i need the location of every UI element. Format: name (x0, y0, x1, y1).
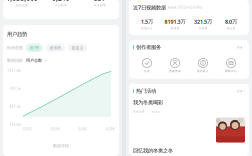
staticText: 点赞量 (198, 27, 207, 30)
button[interactable]: 认证 (133, 58, 161, 73)
staticText: · 数据详情 · (51, 143, 71, 148)
button[interactable]: 更多 › (237, 45, 245, 49)
staticText: 6,219 (52, 0, 70, 3)
staticText: 02/08 (106, 127, 115, 131)
staticText: 1,038,009 (6, 0, 38, 3)
staticText: ▾ (45, 59, 46, 62)
button[interactable]: 创作收入 (189, 58, 217, 73)
staticText: 447.3w (9, 105, 20, 108)
staticText: 8.0万 (225, 18, 237, 25)
button[interactable]: 更多 › (237, 89, 245, 93)
button[interactable]: 我为冬奥喝彩 (133, 99, 245, 142)
staticText: 创作收入 (197, 69, 209, 73)
staticText: 1.5万 (141, 18, 153, 25)
staticText: 今日新增 (55, 4, 67, 7)
staticText: 16389 (150, 110, 160, 113)
button[interactable]: 回忆我的冬奥之冬 (133, 147, 245, 156)
staticText: 321.5万 (194, 18, 212, 25)
staticText: 近30天 (49, 45, 61, 50)
button[interactable]: 近7天 (26, 44, 43, 52)
button[interactable]: 违规查询 (161, 58, 189, 73)
staticText: 认证 (144, 69, 150, 73)
staticText: 近7天 (29, 45, 39, 50)
button[interactable]: 帮助中心 (217, 58, 245, 73)
staticText: 更新至 2022年02月08日 (168, 6, 203, 9)
staticText: 用户总数 (26, 58, 42, 63)
staticText: 昨日新增 (94, 4, 106, 7)
staticText: 违规查询 (169, 69, 181, 73)
button[interactable]: 近30天 (46, 44, 65, 52)
staticText: 我为冬奥喝彩 (133, 99, 163, 106)
staticText: 粉丝总数 (16, 4, 28, 7)
staticText: 数据指标 (7, 58, 23, 63)
staticText: 144.9w (9, 123, 20, 126)
staticText: 创作者服务 (136, 44, 161, 50)
staticText: 837 (94, 0, 106, 3)
staticText: 新增关注 (141, 27, 153, 30)
staticText: 更多 › (237, 45, 245, 49)
staticText: 自定义 (71, 45, 83, 50)
staticText: 02/04 (51, 127, 60, 131)
staticText: 热门活动 (136, 88, 156, 94)
staticText: 近7日视频数据 (133, 4, 166, 11)
button[interactable]: 自定义 (68, 44, 87, 52)
staticText: 02/06 (78, 127, 87, 131)
staticText: 02/02 (23, 127, 32, 131)
staticText: 8191.3万 (164, 18, 185, 25)
staticText: 用户趋势 (7, 31, 27, 38)
staticText: 时间范围 (7, 45, 23, 50)
staticText: 评论量 (226, 27, 235, 30)
staticText: 帮助中心 (225, 69, 237, 73)
staticText: 700.1w (9, 87, 20, 90)
staticText: 回忆我的冬奥之冬 (133, 147, 173, 154)
staticText: 1021.0w (7, 69, 20, 72)
staticText: 观看量 (170, 27, 179, 30)
staticText: 更多 › (237, 89, 245, 93)
staticText: 发表文章 (133, 110, 145, 113)
